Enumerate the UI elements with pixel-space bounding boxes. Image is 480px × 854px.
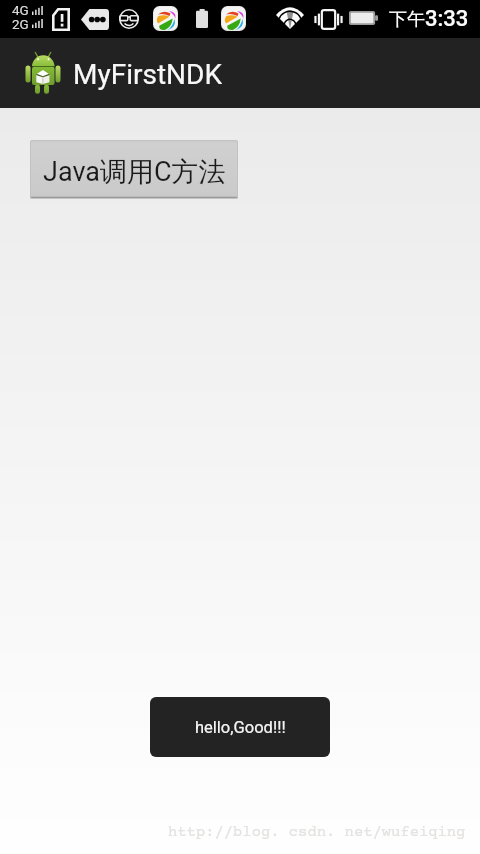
staticText: 下午 [389,8,425,31]
staticText: 4G [12,2,29,18]
staticText: MyFirstNDK [73,58,222,91]
staticText: Java调用C方法 [43,155,226,189]
staticText: 2G [12,16,29,32]
staticText: http://blog. csdn. net/wufeiqing [168,824,466,841]
staticText: hello,Good!!! [195,718,286,737]
button[interactable]: Java调用C方法 [30,140,238,199]
staticText: 3:33 [425,6,469,32]
